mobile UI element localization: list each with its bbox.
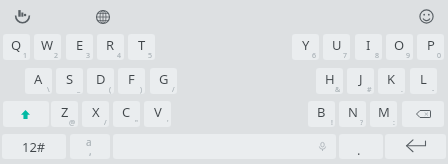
button[interactable]: P: [417, 34, 444, 60]
button[interactable]: G: [150, 68, 177, 94]
button[interactable]: Backspace: [402, 101, 444, 127]
staticText: Z: [61, 103, 69, 121]
staticText: 1: [23, 51, 28, 60]
staticText: ): [140, 85, 143, 94]
button[interactable]: O: [386, 34, 413, 60]
button[interactable]: K: [378, 68, 405, 94]
button[interactable]: Y: [292, 34, 319, 60]
staticText: B: [317, 103, 326, 121]
staticText: ?: [360, 118, 364, 127]
staticText: !: [331, 118, 333, 127]
staticText: 8: [375, 51, 380, 60]
button[interactable]: Enter: [385, 134, 446, 159]
button[interactable]: E: [66, 34, 93, 60]
button[interactable]: Q: [3, 34, 30, 60]
staticText: \: [47, 85, 50, 94]
staticText: /: [104, 118, 107, 127]
staticText: _: [77, 85, 81, 94]
staticText: .: [357, 141, 361, 159]
button[interactable]: D: [87, 68, 114, 94]
staticText: @: [69, 118, 76, 127]
staticText: 2: [54, 51, 59, 60]
staticText: O: [394, 36, 405, 54]
staticText: N: [348, 103, 358, 121]
button[interactable]: .: [339, 134, 383, 159]
button[interactable]: B: [308, 101, 335, 127]
staticText: H: [325, 70, 335, 88]
staticText: 4: [117, 51, 122, 60]
staticText: 0: [437, 51, 442, 60]
staticText: #: [367, 85, 372, 94]
button[interactable]: Keyboard menu: [15, 8, 30, 23]
staticText: S: [66, 70, 74, 88]
button[interactable]: V: [144, 101, 171, 127]
staticText: I: [366, 36, 371, 54]
staticText: F: [128, 70, 135, 88]
staticText: C: [122, 103, 131, 121]
staticText: 12#: [22, 138, 46, 156]
button[interactable]: I: [355, 34, 382, 60]
staticText: G: [159, 70, 169, 88]
staticText: X: [92, 103, 100, 121]
button[interactable]: 12#: [2, 134, 66, 159]
button[interactable]: A: [25, 68, 52, 94]
staticText: R: [106, 36, 115, 54]
staticText: 5: [148, 51, 153, 60]
staticText: Y: [302, 36, 310, 54]
staticText: :: [393, 118, 395, 127]
staticText: 3: [86, 51, 91, 60]
staticText: Q: [11, 36, 22, 54]
staticText: 7: [343, 51, 348, 60]
staticText: a: [86, 135, 92, 149]
staticText: W: [41, 36, 54, 54]
staticText: /: [172, 85, 175, 94]
staticText: 9: [406, 51, 411, 60]
button[interactable]: Symbols: [70, 134, 110, 159]
staticText: ": [135, 118, 138, 127]
staticText: &: [335, 85, 341, 94]
button[interactable]: S: [56, 68, 83, 94]
button[interactable]: Shift: [3, 101, 49, 127]
button[interactable]: Switch language: [95, 9, 111, 25]
button[interactable]: M: [370, 101, 397, 127]
staticText: ,: [89, 144, 92, 158]
button[interactable]: X: [82, 101, 109, 127]
staticText: D: [96, 70, 106, 88]
button[interactable]: Emoji: [419, 9, 434, 24]
button[interactable]: L: [410, 68, 437, 94]
button[interactable]: T: [128, 34, 155, 60]
staticText: A: [34, 70, 43, 88]
staticText: -: [432, 85, 435, 94]
staticText: 6: [312, 51, 317, 60]
button[interactable]: W: [34, 34, 61, 60]
button[interactable]: N: [339, 101, 366, 127]
button[interactable]: J: [347, 68, 374, 94]
staticText: M: [378, 103, 390, 121]
button[interactable]: R: [97, 34, 124, 60]
staticText: .: [401, 85, 403, 94]
staticText: ': [167, 118, 169, 127]
staticText: L: [420, 70, 427, 88]
staticText: V: [154, 103, 162, 121]
staticText: U: [332, 36, 342, 54]
button[interactable]: C: [113, 101, 140, 127]
button[interactable]: F: [118, 68, 145, 94]
staticText: T: [138, 36, 146, 54]
staticText: J: [359, 70, 363, 88]
staticText: (: [109, 85, 112, 94]
button[interactable]: Z: [51, 101, 78, 127]
staticText: P: [427, 36, 435, 54]
button[interactable]: H: [316, 68, 343, 94]
button[interactable]: U: [323, 34, 350, 60]
staticText: K: [387, 70, 396, 88]
staticText: E: [76, 36, 84, 54]
